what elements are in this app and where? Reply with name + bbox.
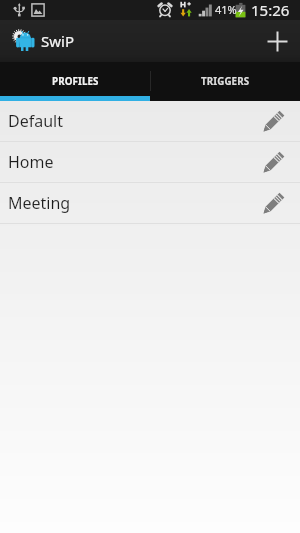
button[interactable]: Meeting (0, 183, 300, 224)
staticText: Home (8, 151, 54, 173)
button[interactable]: Default (0, 101, 300, 142)
button[interactable]: TRIGGERS (150, 62, 300, 96)
button[interactable]: Edit Default (260, 109, 286, 135)
staticText: SwiP (41, 31, 74, 51)
button[interactable]: Edit Meeting (260, 191, 286, 217)
button[interactable]: Edit Home (260, 150, 286, 176)
staticText: PROFILES (52, 75, 99, 88)
staticText: Default (8, 110, 63, 132)
button[interactable]: PROFILES (0, 62, 150, 96)
button[interactable]: Home (0, 142, 300, 183)
staticText: 41% (215, 2, 237, 17)
staticText: TRIGGERS (201, 75, 250, 88)
staticText: Meeting (8, 192, 71, 214)
button[interactable]: Add profile (256, 20, 298, 62)
staticText: 15:26 (251, 0, 290, 20)
